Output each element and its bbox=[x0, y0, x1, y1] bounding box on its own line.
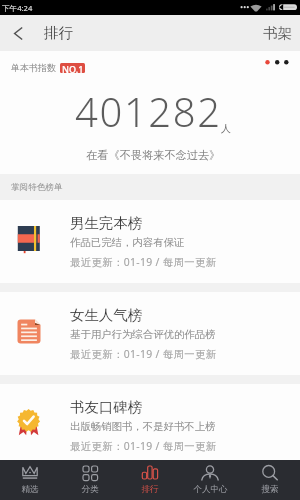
staticText: 最近更新：01-19 / 每周一更新 bbox=[70, 347, 217, 361]
staticText: 掌阅特色榜单 bbox=[11, 182, 63, 193]
staticText: 401282 bbox=[75, 84, 222, 138]
button[interactable]: Back bbox=[0, 15, 36, 51]
staticText: 基于用户行为综合评优的作品榜 bbox=[70, 328, 216, 341]
button[interactable]: 书架 bbox=[249, 16, 300, 50]
staticText: 女生人气榜 bbox=[70, 306, 142, 324]
staticText: 搜索 bbox=[261, 484, 279, 495]
staticText: NO.1 bbox=[62, 63, 84, 73]
staticText: 精选 bbox=[21, 484, 39, 495]
button[interactable]: 女生人气榜 bbox=[0, 292, 300, 375]
button[interactable]: 书友口碑榜 bbox=[0, 384, 300, 467]
button[interactable]: 男生完本榜 bbox=[0, 200, 300, 283]
button[interactable]: 搜索 bbox=[240, 460, 300, 500]
staticText: 作品已完结，内容有保证 bbox=[70, 236, 185, 249]
staticText: 书友口碑榜 bbox=[70, 398, 142, 416]
staticText: 书架 bbox=[263, 24, 292, 42]
staticText: 人 bbox=[221, 122, 231, 135]
staticText: 单本书指数 bbox=[11, 62, 56, 73]
staticText: 男生完本榜 bbox=[70, 214, 142, 232]
staticText: 出版畅销图书，不是好书不上榜 bbox=[70, 420, 216, 433]
button[interactable]: 精选 bbox=[0, 460, 60, 500]
staticText: 分类 bbox=[81, 484, 99, 495]
staticText: 排行 bbox=[141, 484, 159, 495]
staticText: 下午4:24 bbox=[2, 3, 33, 13]
staticText: 个人中心 bbox=[193, 484, 228, 495]
staticText: 在看《不畏将来不念过去》 bbox=[86, 148, 221, 162]
staticText: 最近更新：01-19 / 每周一更新 bbox=[70, 439, 217, 453]
button[interactable]: 分类 bbox=[60, 460, 120, 500]
button[interactable]: 排行 bbox=[120, 460, 180, 500]
staticText: 最近更新：01-19 / 每周一更新 bbox=[70, 255, 217, 269]
button[interactable]: 个人中心 bbox=[180, 460, 240, 500]
staticText: 排行 bbox=[44, 24, 73, 42]
